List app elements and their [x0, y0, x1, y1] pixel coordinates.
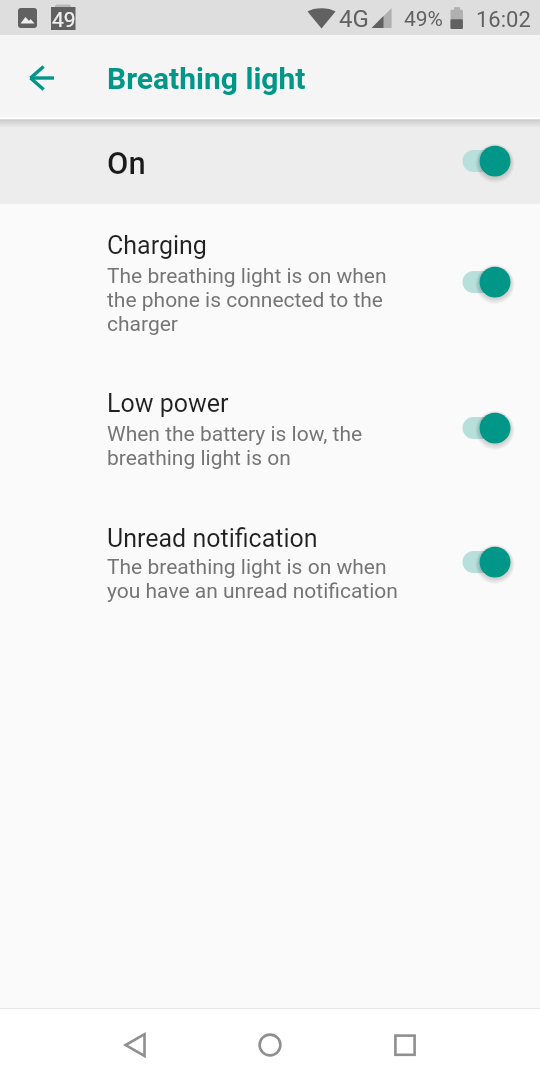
- staticText: The breathing light is on when the phone…: [107, 264, 407, 336]
- staticText: When the battery is low, the breathing l…: [107, 422, 407, 470]
- staticText: 16:02: [476, 7, 531, 33]
- button[interactable]: Low power, on: [462, 410, 514, 446]
- staticText: 4G: [339, 5, 369, 33]
- staticText: Unread notification: [107, 524, 318, 553]
- staticText: 49: [52, 8, 76, 33]
- button[interactable]: Charging: [0, 204, 540, 355]
- button[interactable]: On: [0, 120, 540, 204]
- button[interactable]: Navigate up: [19, 54, 67, 102]
- button[interactable]: Low power: [0, 355, 540, 490]
- staticText: Low power: [107, 389, 229, 418]
- staticText: On: [107, 145, 146, 181]
- button[interactable]: Charging, on: [462, 264, 514, 300]
- button[interactable]: Breathing light, on: [462, 143, 514, 179]
- button[interactable]: Unread notification, on: [462, 544, 514, 580]
- staticText: Breathing light: [107, 61, 306, 96]
- button[interactable]: Home: [230, 1009, 310, 1080]
- button[interactable]: Back: [95, 1009, 175, 1080]
- button[interactable]: Recent apps: [365, 1009, 445, 1080]
- staticText: Charging: [107, 231, 207, 260]
- button[interactable]: Unread notification: [0, 490, 540, 624]
- staticText: The breathing light is on when you have …: [107, 555, 407, 603]
- staticText: 49%: [404, 7, 443, 32]
